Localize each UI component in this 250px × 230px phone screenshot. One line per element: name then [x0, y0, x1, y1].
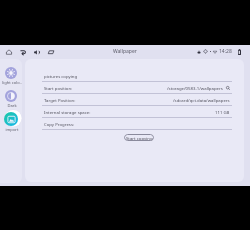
- button[interactable]: Back: [16, 45, 30, 58]
- button[interactable]: Dark: [0, 90, 25, 109]
- button[interactable]: Internal storage space:: [44, 106, 234, 117]
- button[interactable]: Copy Progress:: [44, 118, 234, 129]
- staticText: light colo..: [2, 80, 22, 86]
- staticText: Start position:: [44, 85, 73, 91]
- button[interactable]: light colo..: [0, 67, 25, 86]
- staticText: Wallpaper: [113, 48, 137, 55]
- staticText: Start copying: [126, 135, 153, 141]
- button[interactable]: Start position:: [44, 82, 234, 93]
- button[interactable]: Home: [2, 45, 16, 58]
- staticText: pictures copying: [44, 73, 78, 79]
- button[interactable]: Recents: [44, 45, 58, 58]
- button[interactable]: Start copying: [124, 134, 154, 141]
- staticText: /sdcard/qct.data/wallpapers: [173, 97, 230, 103]
- staticText: 14:28: [219, 48, 232, 55]
- staticText: /storage/0583-1/wallpapers: [167, 85, 223, 91]
- staticText: Dark: [7, 103, 17, 109]
- staticText: 111 GB: [215, 109, 230, 115]
- staticText: Copy Progress:: [44, 121, 75, 127]
- button[interactable]: Volume: [30, 45, 44, 58]
- staticText: import: [5, 127, 19, 133]
- staticText: Target Position:: [44, 97, 76, 103]
- button[interactable]: Target Position:: [44, 94, 234, 105]
- button[interactable]: import: [0, 112, 25, 133]
- staticText: Internal storage space:: [44, 109, 91, 115]
